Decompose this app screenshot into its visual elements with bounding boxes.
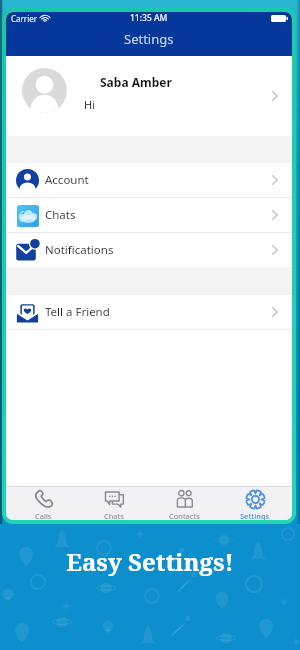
staticText: Chats — [45, 207, 76, 223]
button[interactable]: Chats — [81, 487, 147, 520]
staticText: Contacts — [169, 511, 200, 520]
button[interactable]: Chats — [6, 198, 292, 232]
button[interactable]: Contacts — [151, 487, 217, 520]
staticText: 11:35 AM — [130, 12, 168, 24]
staticText: Carrier — [11, 13, 38, 24]
button[interactable]: Settings — [222, 487, 288, 520]
button[interactable]: Notifications — [6, 233, 292, 267]
staticText: Easy Settings! — [66, 545, 234, 578]
button[interactable]: Account — [6, 163, 292, 197]
staticText: Calls — [35, 511, 52, 520]
staticText: Notifications — [45, 242, 114, 258]
button[interactable]: Calls — [10, 487, 76, 520]
button[interactable]: Saba Amber — [6, 56, 292, 136]
staticText: Account — [45, 172, 89, 188]
staticText: Chats — [104, 511, 124, 520]
button[interactable]: Tell a Friend — [6, 295, 292, 329]
staticText: Tell a Friend — [45, 304, 110, 320]
staticText: Saba Amber — [100, 74, 172, 90]
staticText: Hi — [84, 97, 95, 112]
staticText: Settings — [124, 30, 174, 48]
staticText: Settings — [240, 511, 270, 520]
